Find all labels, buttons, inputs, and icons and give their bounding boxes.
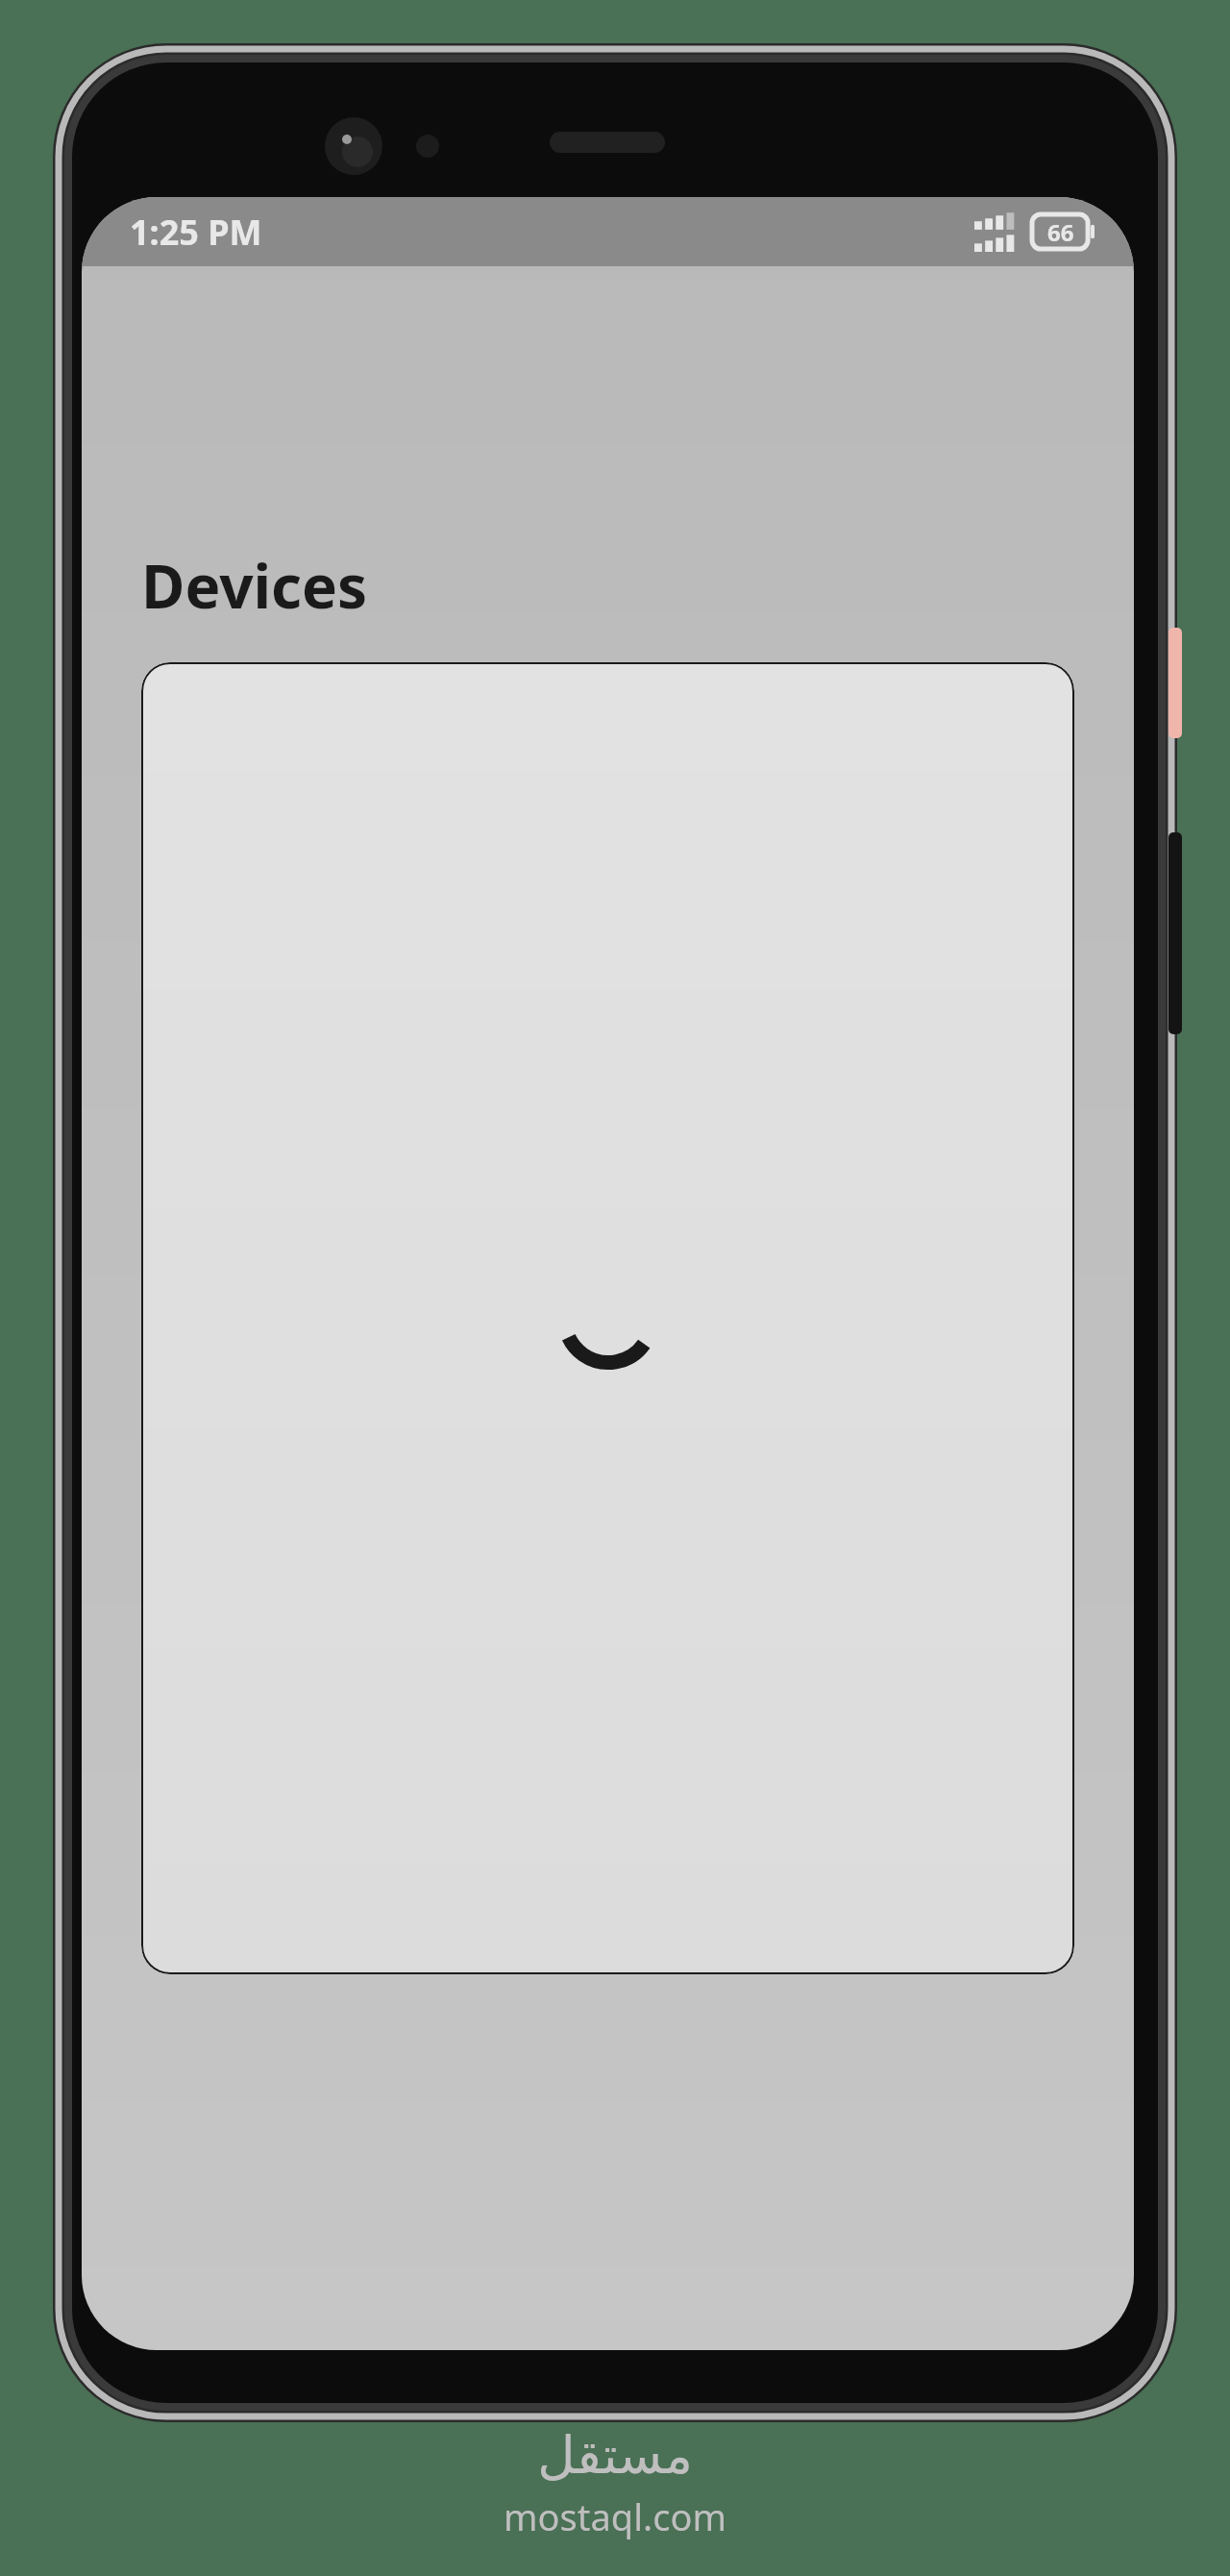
other: Loading — [557, 1268, 659, 1370]
staticText: Devices — [141, 545, 368, 626]
staticText: mostaql.com — [504, 2491, 726, 2541]
button[interactable]: Loading — [141, 662, 1074, 1974]
staticText: مستقل — [537, 2425, 693, 2486]
staticText: 66 — [1047, 216, 1074, 248]
staticText: 1:25 PM — [130, 209, 262, 256]
